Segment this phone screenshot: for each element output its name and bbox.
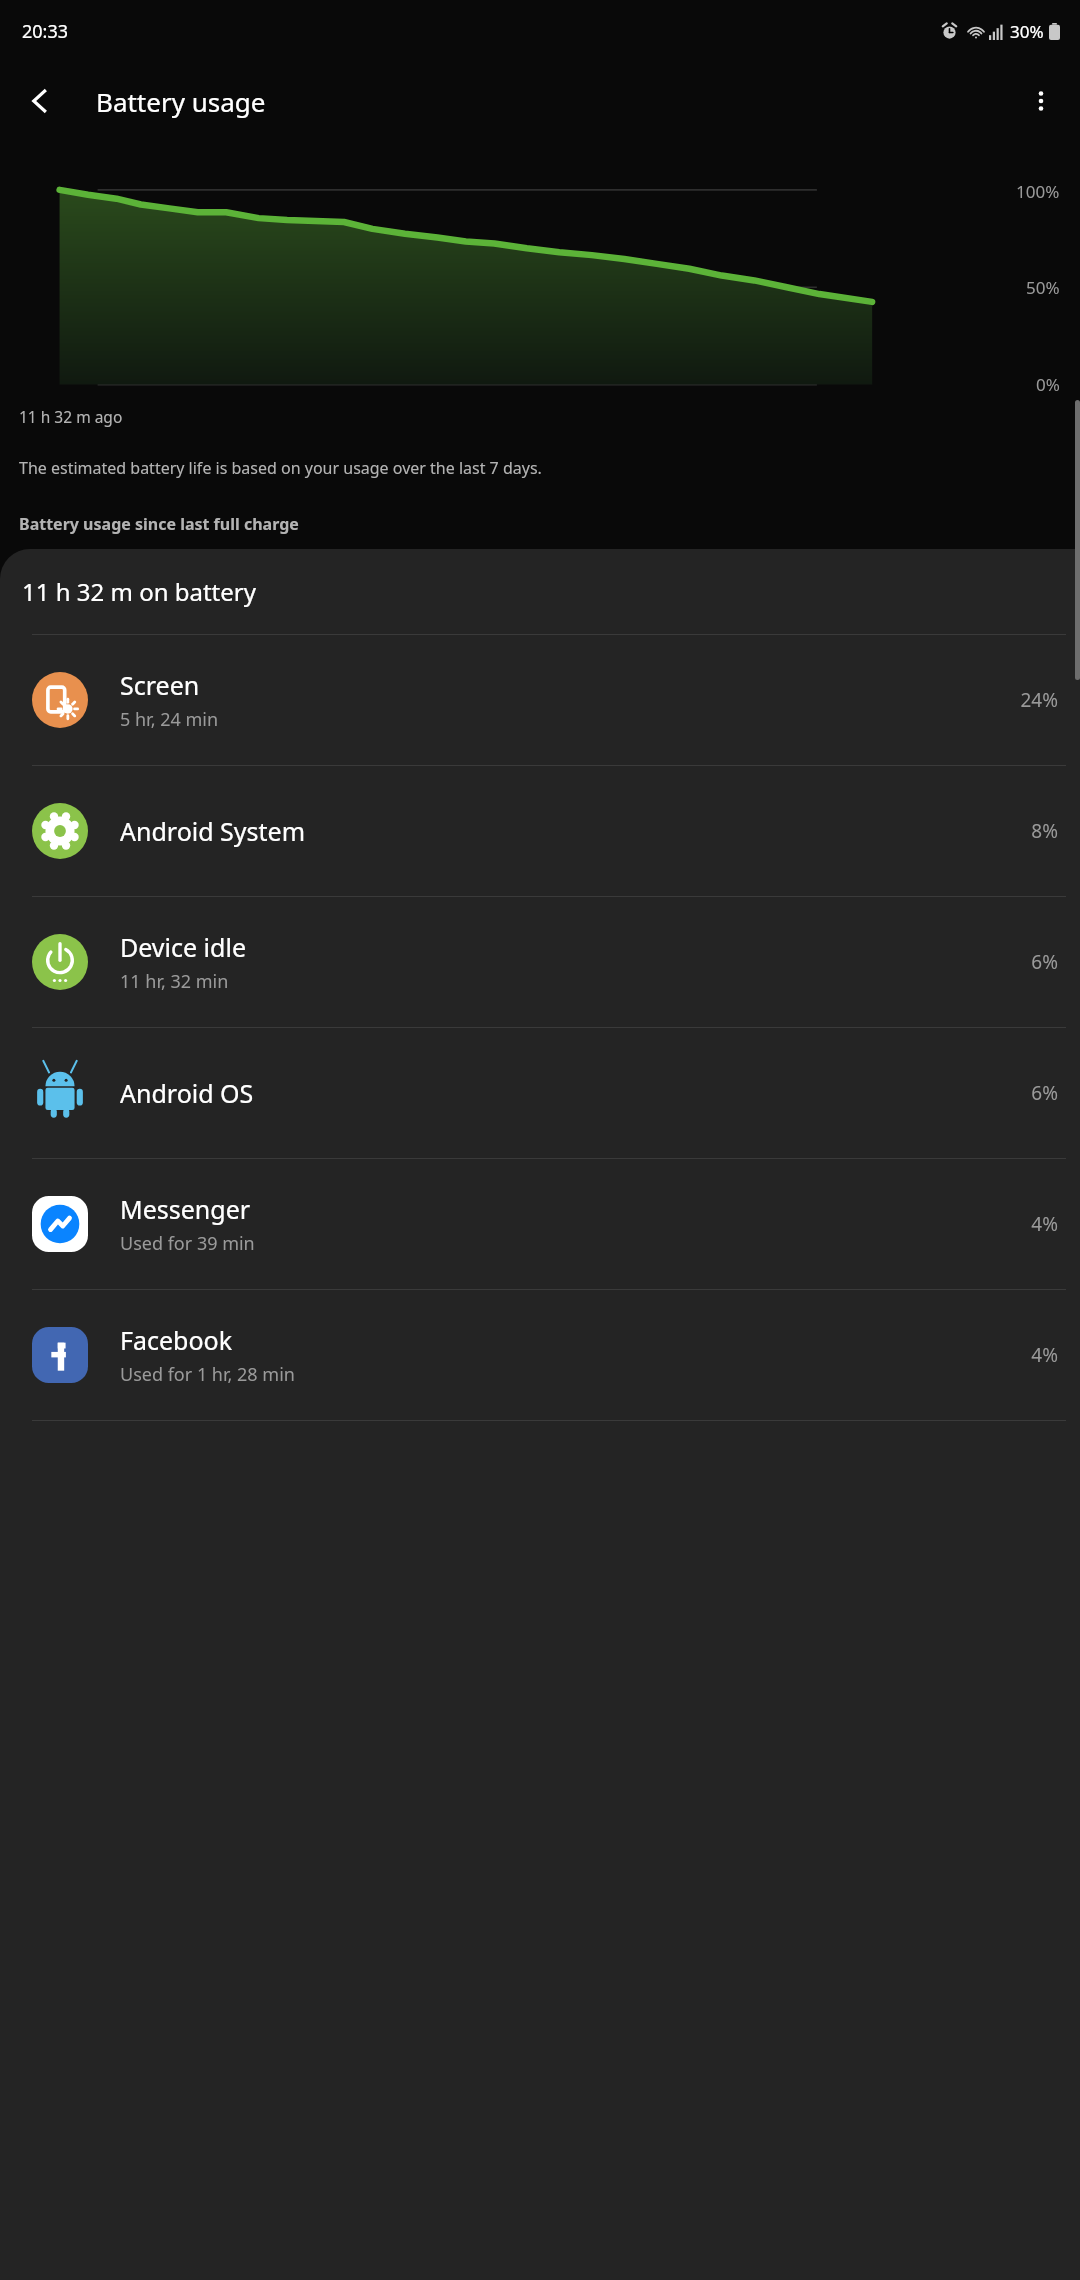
staticText: Device idle: [120, 930, 246, 964]
button[interactable]: Screen: [0, 635, 1080, 765]
staticText: 11 h 32 m on battery: [22, 575, 256, 608]
staticText: Facebook: [120, 1323, 233, 1357]
staticText: 24%: [1020, 687, 1058, 713]
staticText: 100%: [1016, 180, 1060, 203]
staticText: The estimated battery life is based on y…: [19, 457, 542, 479]
staticText: Messenger: [120, 1192, 251, 1226]
staticText: 4%: [1031, 1211, 1058, 1237]
staticText: 8%: [1031, 818, 1058, 844]
staticText: 20:33: [22, 19, 69, 44]
button[interactable]: More options: [1012, 72, 1070, 130]
staticText: Screen: [120, 668, 200, 702]
staticText: Battery usage since last full charge: [19, 513, 299, 535]
button[interactable]: Facebook: [0, 1290, 1080, 1420]
staticText: 4%: [1031, 1342, 1058, 1368]
staticText: Used for 1 hr, 28 min: [120, 1362, 295, 1387]
button[interactable]: Android System: [0, 766, 1080, 896]
staticText: 30%: [1010, 20, 1044, 43]
staticText: 6%: [1031, 949, 1058, 975]
button[interactable]: Back: [10, 71, 70, 131]
button[interactable]: Messenger: [0, 1159, 1080, 1289]
staticText: Android System: [120, 814, 306, 848]
staticText: 0%: [1036, 373, 1060, 396]
staticText: 5 hr, 24 min: [120, 707, 219, 732]
button[interactable]: Android OS: [0, 1028, 1080, 1158]
button[interactable]: Device idle: [0, 897, 1080, 1027]
staticText: 11 h 32 m ago: [19, 406, 123, 427]
staticText: 50%: [1026, 276, 1060, 299]
staticText: Android OS: [120, 1076, 254, 1110]
staticText: Battery usage: [96, 84, 266, 119]
staticText: 11 hr, 32 min: [120, 969, 229, 994]
staticText: 6%: [1031, 1080, 1058, 1106]
staticText: Used for 39 min: [120, 1231, 255, 1256]
